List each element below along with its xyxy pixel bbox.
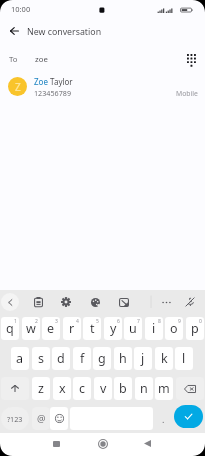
button[interactable]: ?123 — [1, 407, 29, 430]
staticText: n — [140, 380, 148, 397]
staticText: 3 — [55, 318, 58, 325]
staticText: y — [110, 320, 117, 337]
staticText: a — [16, 350, 24, 367]
staticText: b — [119, 380, 127, 397]
staticText: d — [57, 350, 65, 367]
staticText: h — [119, 350, 127, 367]
staticText: @ — [37, 412, 46, 425]
button[interactable]: Dialpad — [179, 47, 203, 71]
button[interactable]: p — [186, 317, 204, 340]
button[interactable]: d — [52, 347, 70, 370]
staticText: Z — [15, 80, 21, 94]
button[interactable]: e — [42, 317, 60, 340]
staticText: 8 — [158, 318, 161, 325]
button[interactable]: t — [83, 317, 101, 340]
button[interactable]: g — [93, 347, 111, 370]
button[interactable]: b — [114, 377, 132, 400]
staticText: z — [38, 380, 44, 397]
staticText: w — [26, 320, 36, 337]
button[interactable]: . — [154, 407, 172, 430]
button[interactable]: zoe — [32, 47, 162, 71]
button[interactable]: o — [165, 317, 183, 340]
staticText: . — [162, 413, 165, 425]
button[interactable]: Send — [174, 405, 203, 428]
button[interactable]: More options — [154, 290, 178, 314]
button[interactable]: Backspace — [176, 377, 204, 400]
button[interactable]: r — [63, 317, 81, 340]
button[interactable]: n — [135, 377, 153, 400]
button[interactable]: Themes — [83, 290, 107, 314]
staticText: q — [6, 320, 14, 337]
staticText: k — [161, 350, 168, 367]
button[interactable]: @ — [32, 407, 50, 430]
button[interactable]: Back — [132, 432, 163, 455]
button[interactable]: k — [155, 347, 173, 370]
staticText: s — [38, 350, 44, 367]
staticText: 0 — [199, 318, 202, 325]
button[interactable]: f — [73, 347, 91, 370]
staticText: zoe — [35, 54, 48, 65]
staticText: i — [152, 320, 156, 337]
button[interactable]: h — [114, 347, 132, 370]
staticText: 123456789 — [34, 88, 72, 98]
button[interactable]: Shift — [1, 377, 29, 400]
staticText: f — [80, 350, 85, 367]
button[interactable]: j — [134, 347, 152, 370]
button[interactable]: Settings — [54, 290, 78, 314]
button[interactable]: s — [32, 347, 50, 370]
staticText: m — [158, 380, 170, 397]
button[interactable]: m — [155, 377, 173, 400]
staticText: To — [9, 54, 18, 65]
staticText: c — [79, 380, 86, 397]
staticText: v — [100, 380, 107, 397]
staticText: 7 — [137, 318, 140, 325]
button[interactable]: y — [104, 317, 122, 340]
staticText: Zoe — [34, 76, 48, 87]
staticText: 10:00 — [11, 4, 31, 14]
button[interactable]: z — [32, 377, 50, 400]
staticText: 9 — [178, 318, 181, 325]
staticText: u — [129, 320, 137, 337]
button[interactable]: Emoji — [50, 407, 68, 430]
staticText: 1 — [14, 318, 17, 325]
button[interactable]: x — [53, 377, 71, 400]
button[interactable]: Z — [0, 72, 205, 100]
button[interactable]: Back — [2, 18, 26, 44]
staticText: e — [47, 320, 55, 337]
staticText: 2 — [35, 318, 38, 325]
button[interactable]: i — [145, 317, 163, 340]
button[interactable]: a — [11, 347, 29, 370]
button[interactable]: c — [73, 377, 91, 400]
staticText: j — [141, 350, 145, 367]
button[interactable]: u — [124, 317, 142, 340]
staticText: 4 — [76, 318, 79, 325]
button[interactable]: l — [175, 347, 193, 370]
button[interactable]: Clipboard — [26, 290, 50, 314]
staticText: 5 — [96, 318, 99, 325]
staticText: g — [98, 350, 106, 367]
button[interactable]: w — [22, 317, 40, 340]
button[interactable]: Previous — [0, 290, 22, 314]
button[interactable]: Recents — [41, 432, 72, 455]
staticText: t — [90, 320, 95, 337]
button[interactable]: q — [1, 317, 19, 340]
staticText: New conversation — [27, 26, 102, 38]
staticText: r — [69, 320, 75, 337]
staticText: o — [170, 320, 178, 337]
staticText: p — [191, 320, 199, 337]
staticText: Mobile — [176, 89, 198, 98]
staticText: x — [59, 380, 66, 397]
button[interactable]: Home — [87, 432, 118, 455]
button[interactable]: Stickers — [112, 290, 136, 314]
staticText: ?123 — [7, 414, 23, 424]
button[interactable]: Voice input off — [178, 290, 202, 314]
staticText: 6 — [117, 318, 120, 325]
staticText: l — [182, 350, 186, 367]
button[interactable]: v — [94, 377, 112, 400]
staticText: Taylor — [48, 76, 73, 87]
